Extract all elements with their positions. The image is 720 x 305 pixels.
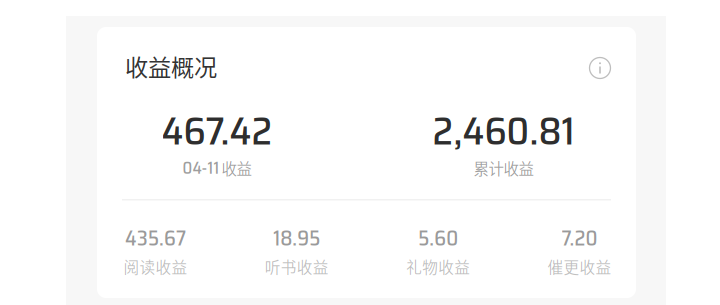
staticText: 收益	[221, 157, 251, 179]
staticText: 礼物收益	[406, 255, 470, 278]
staticText: 435.67	[125, 222, 186, 254]
staticText: 7.20	[561, 222, 597, 254]
staticText: 467.42	[161, 100, 272, 162]
staticText: 18.95	[273, 222, 320, 254]
staticText: 2,460.81	[432, 100, 574, 162]
staticText: 收益概况	[125, 49, 217, 83]
staticText: 累计收益	[473, 157, 533, 179]
staticText: 催更收益	[547, 255, 611, 278]
staticText: 听书收益	[265, 255, 329, 278]
staticText: 阅读收益	[123, 255, 187, 278]
button[interactable]: Earnings info	[589, 57, 611, 79]
staticText: 5.60	[418, 222, 458, 254]
staticText: 04-11	[182, 155, 219, 181]
